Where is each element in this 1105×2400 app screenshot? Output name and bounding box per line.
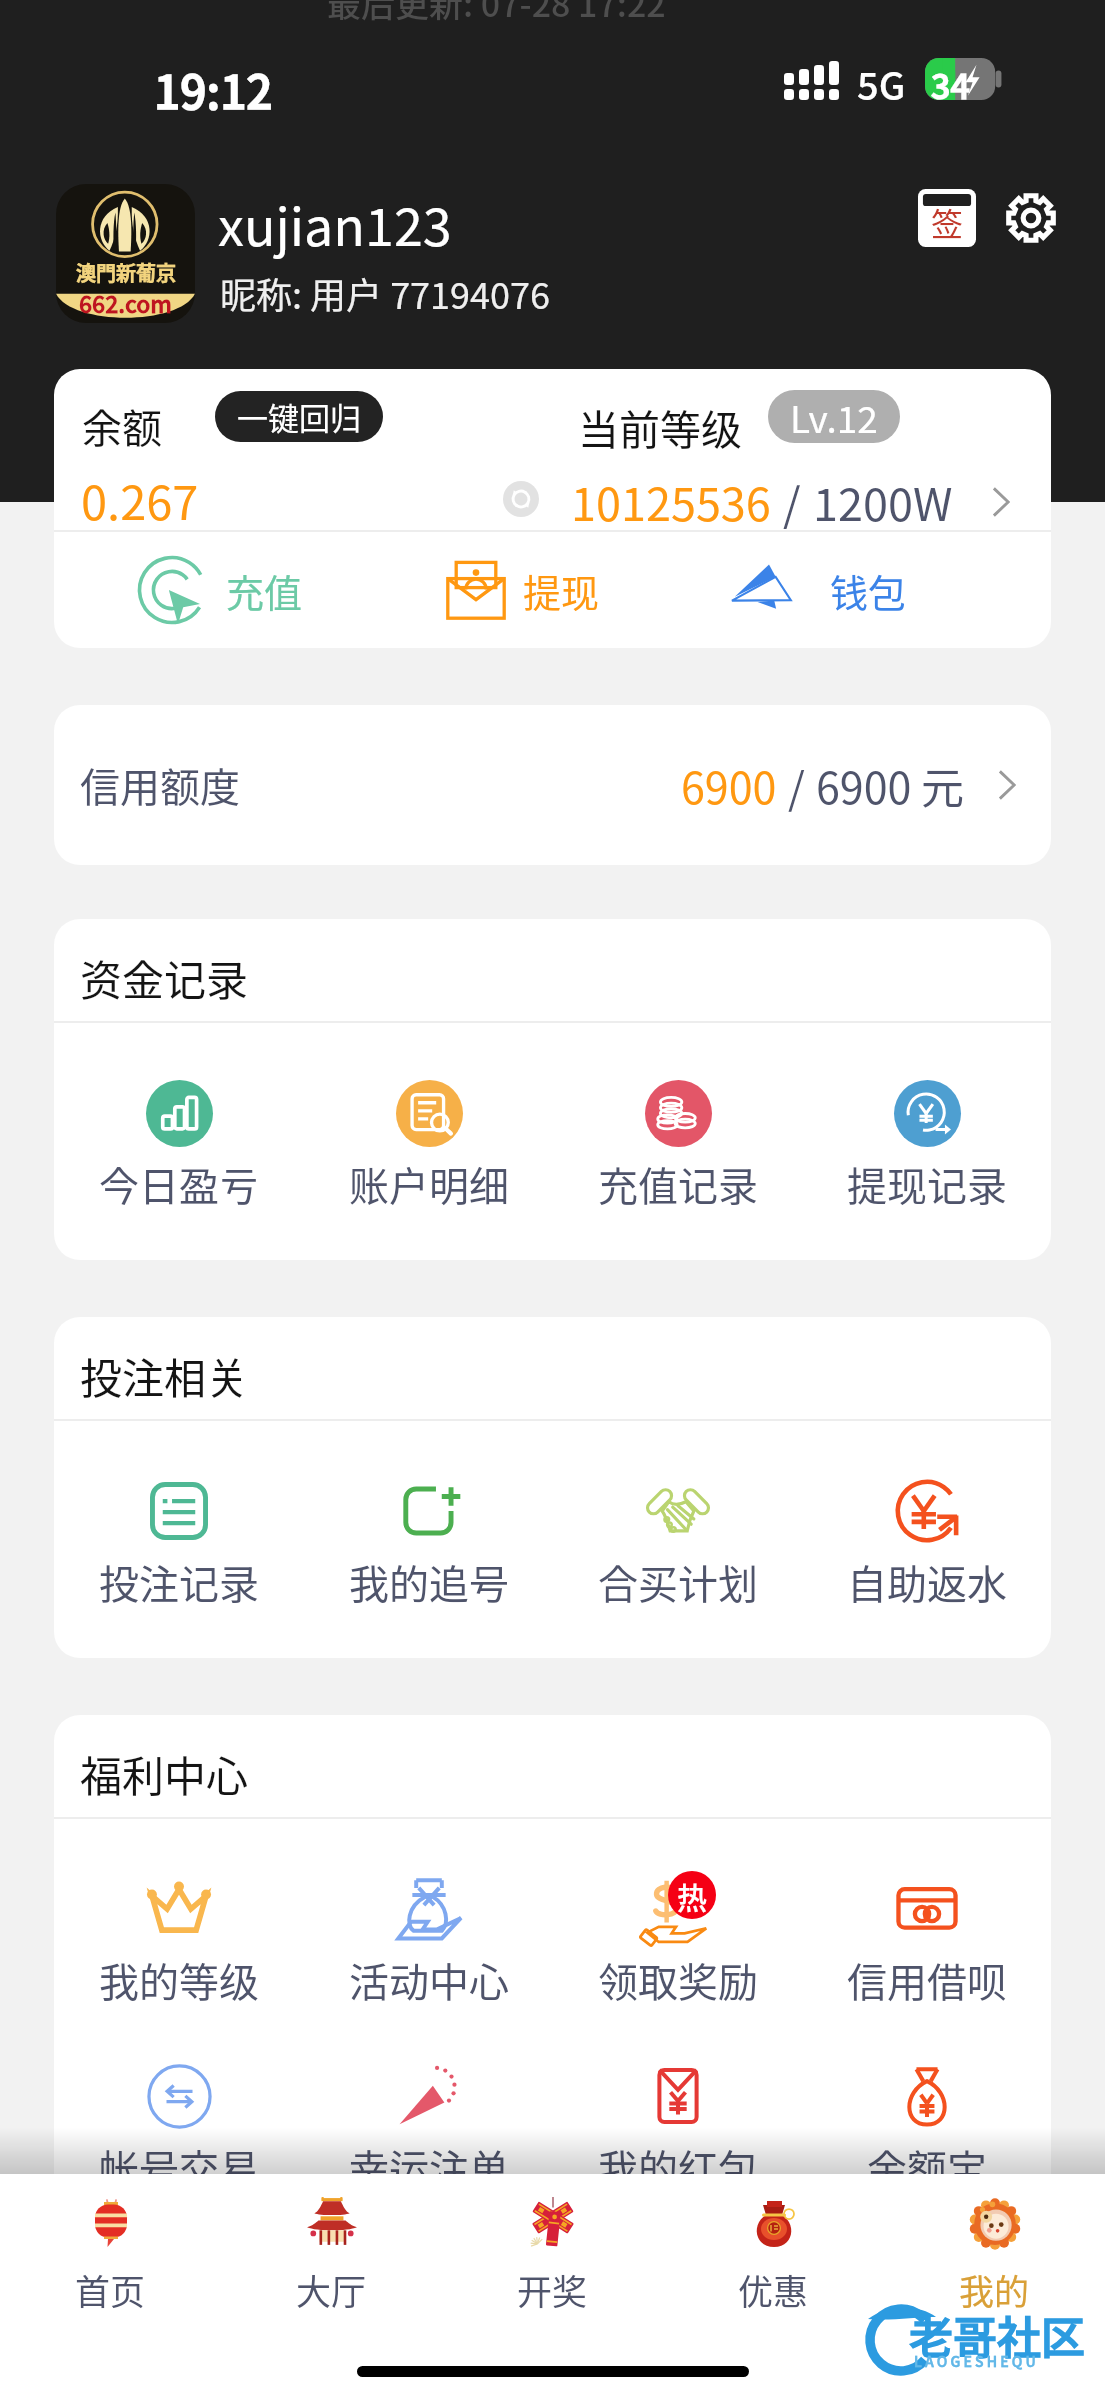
- button[interactable]: 信用额度: [54, 705, 1051, 865]
- staticText: 我的红包: [598, 2138, 758, 2194]
- staticText: 我的追号: [349, 1553, 509, 1609]
- button[interactable]: 开奖: [442, 2174, 663, 2400]
- button[interactable]: 合买计划: [553, 1473, 802, 1609]
- button[interactable]: 自助返水: [802, 1473, 1051, 1609]
- staticText: 充值: [226, 563, 303, 618]
- staticText: 6900: [681, 754, 777, 816]
- staticText: 优惠: [738, 2264, 809, 2315]
- staticText: 老哥社区: [909, 2303, 1085, 2367]
- button[interactable]: 帐号交易: [54, 2058, 304, 2194]
- staticText: 6900 元: [816, 754, 965, 816]
- staticText: 34: [931, 60, 970, 109]
- staticText: 当前等级: [578, 397, 742, 456]
- staticText: 账户明细: [349, 1155, 509, 1211]
- staticText: xujian123: [218, 186, 452, 261]
- button[interactable]: 投注记录: [54, 1473, 304, 1609]
- staticText: 充值记录: [598, 1155, 758, 1211]
- staticText: 大厅: [296, 2264, 367, 2315]
- button[interactable]: 钱包: [731, 532, 907, 648]
- staticText: 我的: [959, 2264, 1030, 2315]
- staticText: 余额宝: [867, 2138, 987, 2194]
- button[interactable]: 充值: [137, 532, 303, 648]
- button[interactable]: Lv.12: [768, 390, 900, 443]
- button[interactable]: 一键回归: [215, 391, 383, 442]
- button[interactable]: 我的: [884, 2174, 1105, 2400]
- staticText: /: [788, 754, 805, 816]
- staticText: 662.com: [79, 286, 173, 319]
- staticText: 提现: [523, 563, 600, 618]
- staticText: 我的等级: [99, 1951, 259, 2007]
- staticText: 一键回归: [237, 394, 361, 439]
- staticText: 自助返水: [847, 1553, 1007, 1609]
- staticText: 首页: [75, 2264, 146, 2315]
- staticText: 合买计划: [598, 1553, 758, 1609]
- button[interactable]: 我的追号: [304, 1473, 553, 1609]
- staticText: 活动中心: [349, 1951, 509, 2007]
- staticText: 最后更新: 07-28 17:22: [327, 0, 666, 27]
- staticText: 今日盈亏: [99, 1155, 259, 1211]
- button[interactable]: 充值记录: [553, 1075, 802, 1211]
- button[interactable]: 优惠: [663, 2174, 884, 2400]
- staticText: 0.267: [81, 465, 199, 533]
- button[interactable]: 提现: [446, 532, 600, 648]
- button[interactable]: 我的红包: [553, 2058, 802, 2194]
- staticText: 资金记录: [80, 947, 249, 1008]
- staticText: 澳門新葡京: [76, 258, 176, 287]
- staticText: 信用借呗: [847, 1951, 1007, 2007]
- staticText: Lv.12: [790, 390, 878, 443]
- staticText: 投注相关: [80, 1345, 249, 1406]
- staticText: 幸运注单: [349, 2138, 509, 2194]
- staticText: 10125536: [571, 469, 771, 534]
- button[interactable]: 幸运注单: [304, 2058, 553, 2194]
- staticText: 领取奖励: [598, 1951, 758, 2007]
- staticText: 提现记录: [847, 1155, 1007, 1211]
- button[interactable]: 今日盈亏: [54, 1075, 304, 1211]
- button[interactable]: 信用借呗: [802, 1871, 1051, 2007]
- button[interactable]: 余额宝: [802, 2058, 1051, 2194]
- staticText: 帐号交易: [99, 2138, 259, 2194]
- staticText: 投注记录: [99, 1553, 259, 1609]
- staticText: 19:12: [154, 56, 273, 123]
- button[interactable]: 我的等级: [54, 1871, 304, 2007]
- button[interactable]: 账户明细: [304, 1075, 553, 1211]
- button[interactable]: 提现记录: [802, 1075, 1051, 1211]
- staticText: 5G: [857, 56, 906, 111]
- staticText: /: [783, 469, 801, 534]
- staticText: 余额: [82, 397, 162, 455]
- staticText: 1200W: [813, 469, 953, 534]
- staticText: L A O G E S H E Q U: [914, 2351, 1036, 2371]
- staticText: 热: [677, 1874, 707, 1917]
- staticText: 钱包: [830, 563, 907, 618]
- button[interactable]: 设置: [989, 176, 1073, 260]
- staticText: 开奖: [517, 2264, 588, 2315]
- staticText: 福利中心: [80, 1743, 249, 1804]
- button[interactable]: 签到: [905, 176, 989, 260]
- button[interactable]: 大厅: [221, 2174, 442, 2400]
- button[interactable]: 活动中心: [304, 1871, 553, 2007]
- staticText: 签: [931, 199, 964, 245]
- button[interactable]: 头像: [56, 184, 195, 323]
- button[interactable]: 热: [553, 1871, 802, 2007]
- staticText: 昵称: 用户 77194076: [220, 267, 550, 319]
- button[interactable]: 首页: [0, 2174, 221, 2400]
- staticText: 信用额度: [80, 756, 240, 814]
